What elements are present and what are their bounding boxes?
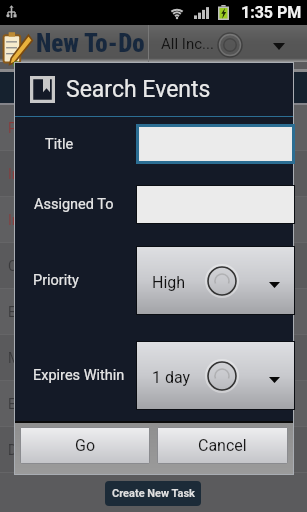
staticText: Call the insurer bbox=[8, 258, 102, 274]
staticText: All Inc... bbox=[161, 35, 214, 53]
button[interactable]: Install new shelf bbox=[8, 197, 307, 242]
staticText: New To-Do bbox=[36, 29, 145, 58]
staticText: Inspect the roof bbox=[8, 166, 107, 182]
staticText: 1:35 PM bbox=[241, 3, 302, 22]
button[interactable]: All Inc... bbox=[149, 25, 307, 62]
button[interactable]: High bbox=[137, 247, 294, 314]
staticText: Empty the garage bbox=[8, 396, 117, 412]
button[interactable]: Empty the garage bbox=[8, 381, 307, 426]
button[interactable]: Call the insurer bbox=[8, 243, 307, 288]
staticText: 1 day bbox=[152, 368, 191, 387]
staticText: Meet with Jason bbox=[8, 350, 112, 366]
staticText: High bbox=[152, 273, 186, 292]
button[interactable]: Create New Task bbox=[105, 481, 201, 506]
staticText: Go bbox=[75, 436, 96, 455]
staticText: Expires Within bbox=[33, 367, 125, 384]
button[interactable]: Inspect the roof bbox=[8, 151, 307, 196]
staticText: Create New Task bbox=[112, 487, 195, 500]
staticText: Drop off the keys bbox=[8, 442, 114, 458]
button[interactable]: 1 day bbox=[137, 342, 294, 409]
staticText: Email the office bbox=[8, 304, 105, 320]
button[interactable]: New To-Do bbox=[0, 25, 148, 62]
staticText: Assigned To bbox=[34, 196, 114, 213]
staticText: Cancel bbox=[198, 436, 247, 455]
staticText: Search Events bbox=[66, 76, 211, 103]
staticText: Install new shelf bbox=[8, 212, 110, 228]
button[interactable]: Meet with Jason bbox=[8, 335, 307, 380]
staticText: Title bbox=[45, 136, 74, 153]
button[interactable]: Pay the bills bbox=[8, 105, 307, 150]
button[interactable]: Go bbox=[21, 428, 149, 463]
button[interactable]: Email the office bbox=[8, 289, 307, 334]
staticText: Pay the bills bbox=[8, 120, 83, 136]
staticText: Priority bbox=[33, 272, 79, 289]
button[interactable]: Cancel bbox=[158, 428, 287, 463]
button[interactable]: Drop off the keys bbox=[8, 427, 307, 472]
